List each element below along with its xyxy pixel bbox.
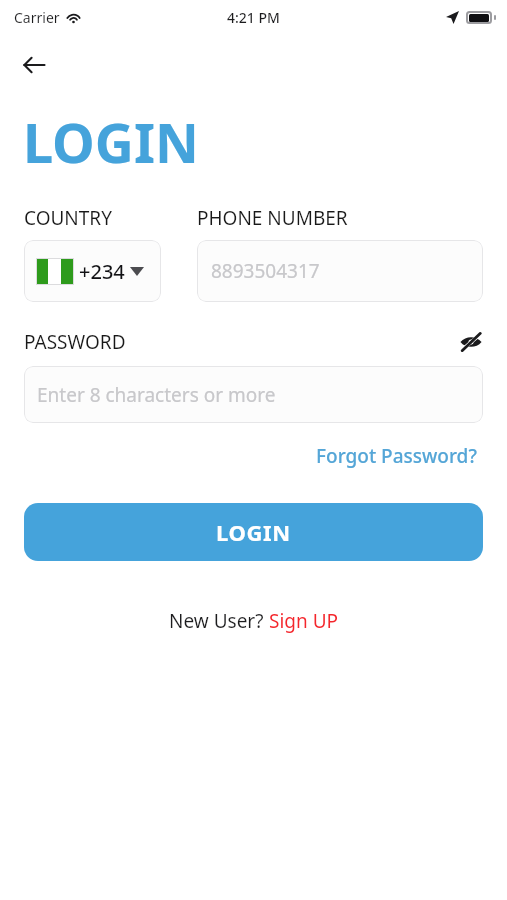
button[interactable]: LOGIN [24,503,483,561]
staticText: +234 [79,258,125,285]
button[interactable]: Back [12,43,56,87]
staticText: New User? [169,608,269,634]
button[interactable]: 8893504317 [197,240,483,302]
button[interactable]: Show password [455,326,487,358]
button[interactable]: +234 [24,240,161,302]
staticText: Carrier [14,8,60,27]
staticText: Sign UP [269,608,339,634]
staticText: 8893504317 [211,258,320,284]
staticText: Enter 8 characters or more [37,382,276,408]
staticText: PASSWORD [24,329,126,355]
button[interactable]: Forgot Password? [310,437,483,475]
staticText: 4:21 PM [227,8,280,27]
staticText: LOGIN [216,517,291,547]
button[interactable]: Enter 8 characters or more [24,366,483,423]
staticText: PHONE NUMBER [197,205,348,231]
staticText: COUNTRY [24,205,112,231]
staticText: LOGIN [23,105,199,179]
button[interactable]: Sign UP [269,608,339,634]
staticText: Forgot Password? [316,443,477,469]
